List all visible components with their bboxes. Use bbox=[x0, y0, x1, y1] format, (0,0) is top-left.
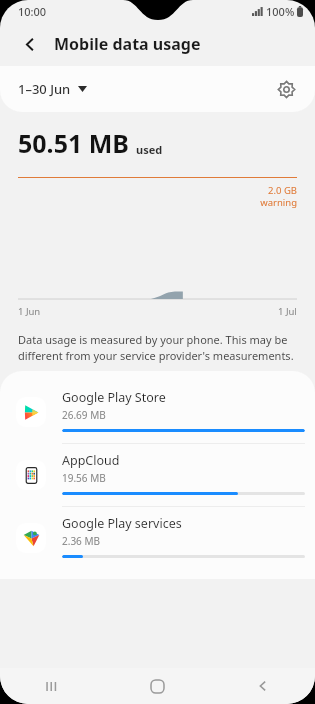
staticText: 1 Jun bbox=[18, 305, 41, 318]
staticText: AppCloud bbox=[62, 452, 120, 469]
staticText: 26.69 MB bbox=[62, 408, 106, 422]
button[interactable]: Recent apps bbox=[0, 668, 105, 704]
button[interactable]: AppCloud bbox=[0, 444, 315, 506]
button[interactable]: 1–30 Jun bbox=[12, 76, 93, 102]
staticText: 2.0 GB warning bbox=[18, 184, 297, 209]
staticText: 50.51 MB bbox=[18, 126, 129, 160]
button[interactable]: Home bbox=[105, 668, 210, 704]
button[interactable]: Google Play services bbox=[0, 507, 315, 569]
staticText: Google Play Store bbox=[62, 389, 166, 406]
button[interactable]: Back bbox=[14, 28, 46, 60]
staticText: 19.56 MB bbox=[62, 471, 106, 485]
button[interactable]: Settings bbox=[269, 72, 303, 106]
staticText: 100% bbox=[266, 4, 295, 19]
staticText: 10:00 bbox=[18, 4, 47, 19]
staticText: 1–30 Jun bbox=[18, 80, 71, 98]
staticText: Mobile data usage bbox=[54, 33, 201, 55]
button[interactable]: Back bbox=[210, 668, 315, 704]
staticText: Data usage is measured by your phone. Th… bbox=[18, 332, 301, 363]
staticText: Google Play services bbox=[62, 515, 182, 532]
staticText: used bbox=[136, 142, 163, 157]
staticText: 2.36 MB bbox=[62, 534, 101, 548]
staticText: 1 Jul bbox=[278, 305, 297, 318]
button[interactable]: Google Play Store bbox=[0, 381, 315, 443]
